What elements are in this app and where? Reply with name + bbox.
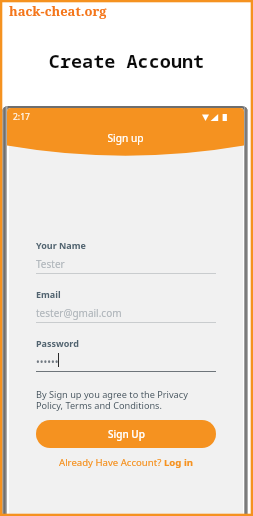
staticText: •••••• xyxy=(36,355,59,369)
staticText: By Sign up you agree to the Privacy Poli… xyxy=(36,388,216,411)
button[interactable]: Sign Up xyxy=(36,420,216,448)
staticText: Sign Up xyxy=(108,427,145,441)
staticText: Your Name xyxy=(36,239,86,251)
staticText: Create Account xyxy=(0,48,253,73)
staticText: Log in xyxy=(164,456,194,469)
staticText: 2:17 xyxy=(13,111,30,123)
staticText: Tester xyxy=(36,257,65,271)
staticText: Sign up xyxy=(7,131,244,145)
staticText: hack-cheat.org xyxy=(9,2,107,20)
staticText: Already Have Account? xyxy=(59,456,164,469)
other: Status icons xyxy=(202,114,227,121)
staticText: tester@gmail.com xyxy=(36,306,122,320)
staticText: Password xyxy=(36,337,79,349)
button[interactable]: Already Have Account? xyxy=(36,456,216,469)
staticText: Email xyxy=(36,288,61,300)
